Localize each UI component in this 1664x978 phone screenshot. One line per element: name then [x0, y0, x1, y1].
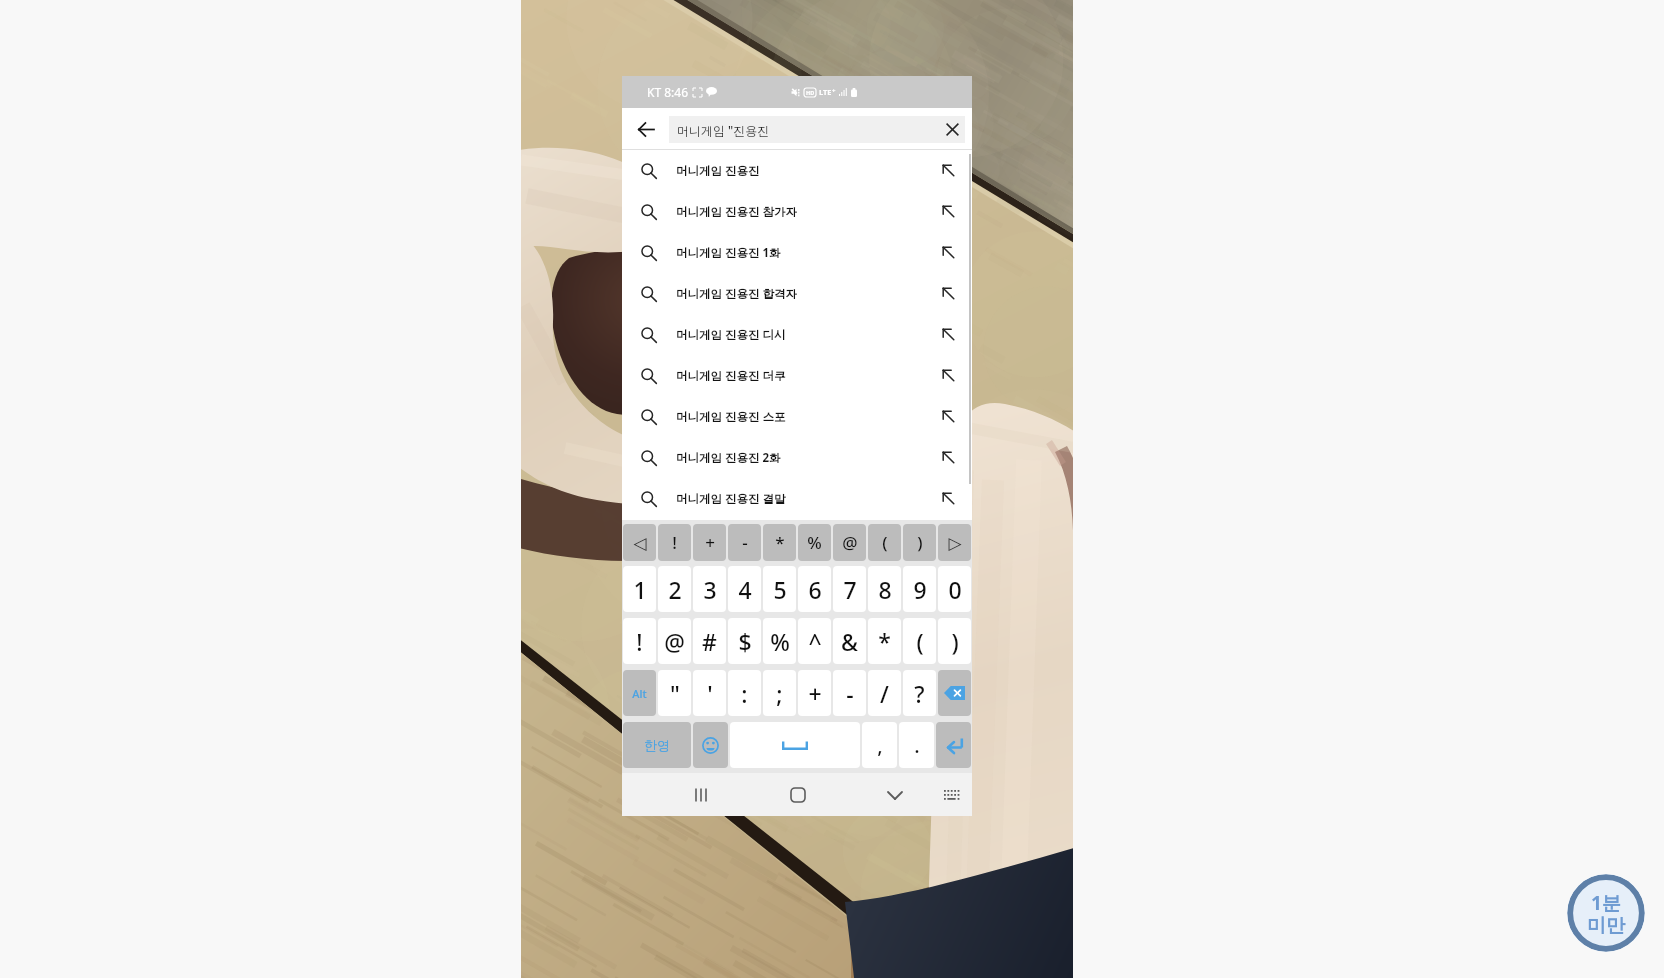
- button[interactable]: !: [658, 524, 691, 561]
- button[interactable]: .: [899, 722, 934, 768]
- staticText: 6: [808, 574, 822, 605]
- staticText: 0: [948, 574, 962, 605]
- staticText: 1: [633, 574, 647, 605]
- button[interactable]: &: [833, 618, 866, 664]
- button[interactable]: !: [623, 618, 656, 664]
- button[interactable]: ◁: [623, 524, 656, 561]
- button[interactable]: *: [868, 618, 901, 664]
- button[interactable]: %: [798, 524, 831, 561]
- button[interactable]: 5: [763, 566, 796, 612]
- staticText: %: [807, 531, 822, 554]
- button[interactable]: Hide keyboard: [875, 775, 915, 815]
- button[interactable]: 머니게임 진용진 스포: [622, 396, 972, 437]
- button[interactable]: 9: [903, 566, 936, 612]
- button[interactable]: ;: [763, 670, 796, 716]
- staticText: (: [882, 531, 888, 554]
- button[interactable]: Clear: [939, 116, 965, 143]
- button[interactable]: 0: [938, 566, 971, 612]
- button[interactable]: (: [903, 618, 936, 664]
- button[interactable]: %: [763, 618, 796, 664]
- button[interactable]: ^: [798, 618, 831, 664]
- button[interactable]: +: [798, 670, 831, 716]
- staticText: 5: [773, 574, 787, 605]
- staticText: ◁: [633, 533, 647, 553]
- button[interactable]: 7: [833, 566, 866, 612]
- button[interactable]: 머니게임 진용진 2화: [622, 437, 972, 478]
- staticText: -: [742, 531, 748, 554]
- button[interactable]: ,: [862, 722, 897, 768]
- button[interactable]: 머니게임 진용진 참가자: [622, 191, 972, 232]
- staticText: !: [672, 531, 677, 554]
- button[interactable]: ?: [903, 670, 936, 716]
- button[interactable]: -: [833, 670, 866, 716]
- button[interactable]: Emoji: [693, 722, 728, 768]
- button[interactable]: ▷: [938, 524, 971, 561]
- staticText: HD: [806, 89, 815, 96]
- button[interactable]: Space: [730, 722, 860, 768]
- button[interactable]: 6: [798, 566, 831, 612]
- staticText: ▷: [948, 533, 962, 553]
- staticText: ): [951, 626, 959, 657]
- button[interactable]: $: [728, 618, 761, 664]
- staticText: -: [846, 678, 854, 709]
- staticText: 7: [843, 574, 857, 605]
- button[interactable]: 머니게임 진용진 합격자: [622, 273, 972, 314]
- staticText: *: [775, 531, 785, 554]
- staticText: 4: [738, 574, 752, 605]
- button[interactable]: 한영: [623, 722, 691, 768]
- staticText: 1분 미만: [1587, 890, 1625, 937]
- staticText: *: [878, 626, 891, 657]
- staticText: @: [664, 626, 685, 657]
- button[interactable]: 머니게임 "진용진: [669, 116, 965, 143]
- button[interactable]: 1분 미만: [1567, 874, 1645, 952]
- button[interactable]: /: [868, 670, 901, 716]
- staticText: 8: [878, 574, 892, 605]
- button[interactable]: +: [693, 524, 726, 561]
- staticText: ;: [776, 678, 783, 709]
- button[interactable]: @: [658, 618, 691, 664]
- button[interactable]: Backspace: [938, 670, 971, 716]
- staticText: ": [670, 678, 680, 709]
- staticText: 머니게임 진용진: [676, 163, 760, 179]
- button[interactable]: 3: [693, 566, 726, 612]
- button[interactable]: Back: [622, 108, 669, 150]
- button[interactable]: #: [693, 618, 726, 664]
- button[interactable]: *: [763, 524, 796, 561]
- button[interactable]: ': [693, 670, 726, 716]
- button[interactable]: Alt: [623, 670, 656, 716]
- staticText: &: [841, 626, 858, 657]
- button[interactable]: Keyboard layout: [932, 775, 972, 815]
- button[interactable]: ": [658, 670, 691, 716]
- staticText: 머니게임 "진용진: [677, 122, 770, 138]
- staticText: 머니게임 진용진 1화: [676, 245, 781, 261]
- staticText: ): [917, 531, 923, 554]
- button[interactable]: 1: [623, 566, 656, 612]
- button[interactable]: @: [833, 524, 866, 561]
- button[interactable]: 머니게임 진용진 1화: [622, 232, 972, 273]
- button[interactable]: 머니게임 진용진: [622, 150, 972, 191]
- button[interactable]: 4: [728, 566, 761, 612]
- staticText: 머니게임 진용진 더쿠: [676, 368, 786, 384]
- staticText: ?: [914, 678, 925, 709]
- button[interactable]: (: [868, 524, 901, 561]
- button[interactable]: ): [903, 524, 936, 561]
- button[interactable]: 머니게임 진용진 더쿠: [622, 355, 972, 396]
- button[interactable]: :: [728, 670, 761, 716]
- staticText: @: [842, 531, 858, 554]
- button[interactable]: 8: [868, 566, 901, 612]
- staticText: 머니게임 진용진 디시: [676, 327, 786, 343]
- button[interactable]: 2: [658, 566, 691, 612]
- button[interactable]: ): [938, 618, 971, 664]
- button[interactable]: Recents: [680, 775, 720, 815]
- staticText: +: [832, 87, 836, 95]
- button[interactable]: Home: [778, 775, 818, 815]
- staticText: 머니게임 진용진 스포: [676, 409, 786, 425]
- staticText: %: [770, 626, 790, 657]
- staticText: 머니게임 진용진 2화: [676, 450, 781, 466]
- staticText: (: [916, 626, 924, 657]
- staticText: /: [880, 678, 889, 709]
- button[interactable]: Enter: [936, 722, 971, 768]
- button[interactable]: 머니게임 진용진 결말: [622, 478, 972, 519]
- button[interactable]: -: [728, 524, 761, 561]
- button[interactable]: 머니게임 진용진 디시: [622, 314, 972, 355]
